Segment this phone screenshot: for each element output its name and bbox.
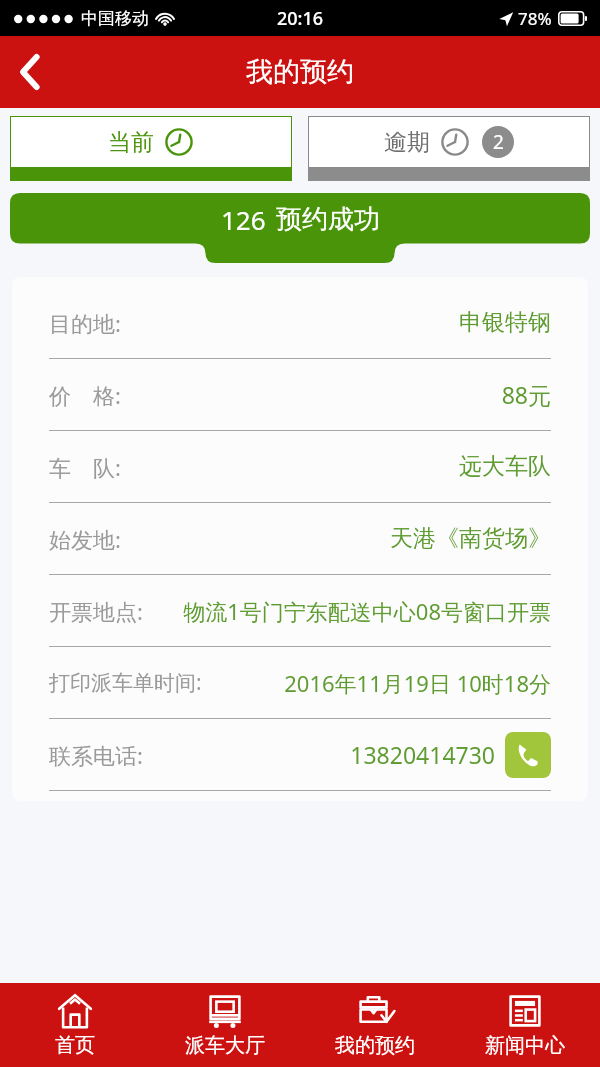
staticText: 20:16 [277,6,324,31]
staticText: 当前 [108,128,154,157]
staticText: 78% [518,7,552,30]
staticText: 始发地: [49,524,121,554]
staticText: 首页 [55,1033,95,1058]
staticText: 车 队: [49,452,121,482]
button[interactable]: Back [0,42,60,102]
button[interactable]: 我的预约 [300,983,450,1067]
staticText: 开票地点: [49,596,143,626]
staticText: 价 格: [49,380,121,410]
button[interactable]: 新闻中心 [450,983,600,1067]
staticText: 派车大厅 [185,1033,265,1058]
button[interactable]: 逾期 [308,116,590,181]
staticText: 联系电话: [49,740,143,770]
staticText: 新闻中心 [485,1033,565,1058]
staticText: 天港《南货场》 [390,524,551,553]
staticText: 打印派车单时间: [49,668,202,697]
button[interactable]: 首页 [0,983,150,1067]
staticText: 2 [493,129,504,155]
staticText: 逾期 [384,128,430,157]
button[interactable]: 当前 [10,116,292,181]
staticText: 2016年11月19日 10时18分 [284,668,551,698]
staticText: 88元 [501,379,551,410]
staticText: 目的地: [49,308,121,338]
staticText: 预约成功 [276,203,380,236]
staticText: 126 [221,202,266,237]
staticText: 我的预约 [335,1033,415,1058]
staticText: 申银特钢 [459,308,551,337]
button[interactable]: Call [505,732,551,778]
staticText: 13820414730 [350,739,495,770]
staticText: 我的预约 [246,55,354,89]
staticText: 物流1号门宁东配送中心08号窗口开票 [183,596,551,626]
staticText: 远大车队 [459,452,551,481]
button[interactable]: 派车大厅 [150,983,300,1067]
staticText: 中国移动 [81,8,149,29]
